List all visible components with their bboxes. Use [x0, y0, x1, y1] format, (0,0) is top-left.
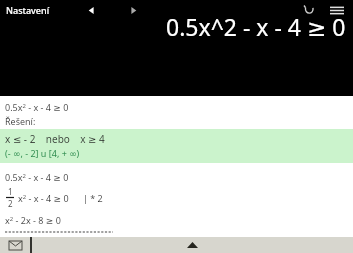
staticText: x ≤ - 2 nebo x ≥ 4	[5, 132, 105, 146]
button[interactable]: Previous	[82, 1, 100, 19]
staticText: 1	[8, 186, 13, 197]
staticText: 0.5x2 - x - 4 ≥ 0	[5, 171, 69, 183]
staticText: x2 - 2x - 8 ≥ 0	[5, 214, 61, 226]
button[interactable]: Next	[124, 1, 142, 19]
staticText: 0.5x2 - x - 4 ≥ 0	[5, 101, 69, 113]
button[interactable]: Undo	[299, 0, 319, 20]
staticText: (- ∞, - 2] u [4, + ∞)	[5, 147, 80, 159]
button[interactable]: Mail	[0, 237, 30, 253]
button[interactable]: Expand	[32, 237, 353, 253]
button[interactable]: Nastavení	[0, 1, 56, 19]
button[interactable]: Menu	[325, 0, 349, 20]
staticText: Řešení:	[5, 115, 36, 127]
staticText: | * 2	[83, 192, 103, 204]
staticText: 2	[8, 198, 13, 209]
staticText: x2 - x - 4 ≥ 0	[18, 192, 69, 204]
staticText: 0.5x^2 - x - 4 ≥ 0	[166, 11, 346, 42]
button[interactable]: x ≤ - 2 nebo x ≥ 4	[0, 129, 353, 163]
staticText: Nastavení	[6, 4, 50, 16]
